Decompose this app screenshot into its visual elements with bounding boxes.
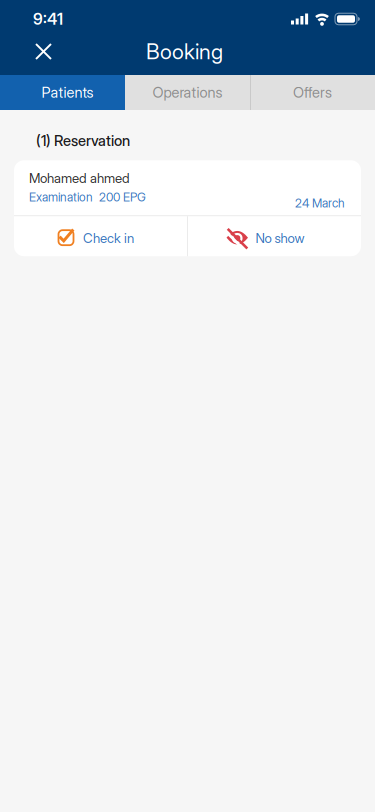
staticText: 24 March [295, 196, 345, 210]
staticText: Check in [83, 230, 134, 246]
staticText: 200 EPG [99, 190, 146, 204]
staticText: Mohamed ahmed [29, 170, 130, 186]
button[interactable]: Check in [14, 216, 187, 256]
button[interactable]: Operations [125, 75, 250, 110]
button[interactable]: Offers [250, 75, 375, 110]
staticText: (1) Reservation [36, 132, 130, 149]
button[interactable]: No show [188, 216, 361, 256]
staticText: 9:41 [33, 10, 63, 28]
staticText: Operations [152, 84, 222, 101]
button[interactable]: Close [0, 40, 51, 63]
staticText: Offers [293, 84, 332, 101]
staticText: No show [255, 230, 304, 246]
button[interactable]: Patients [0, 75, 125, 110]
staticText: Patients [41, 84, 93, 101]
staticText: Examination [29, 190, 93, 204]
staticText: Booking [146, 39, 223, 64]
